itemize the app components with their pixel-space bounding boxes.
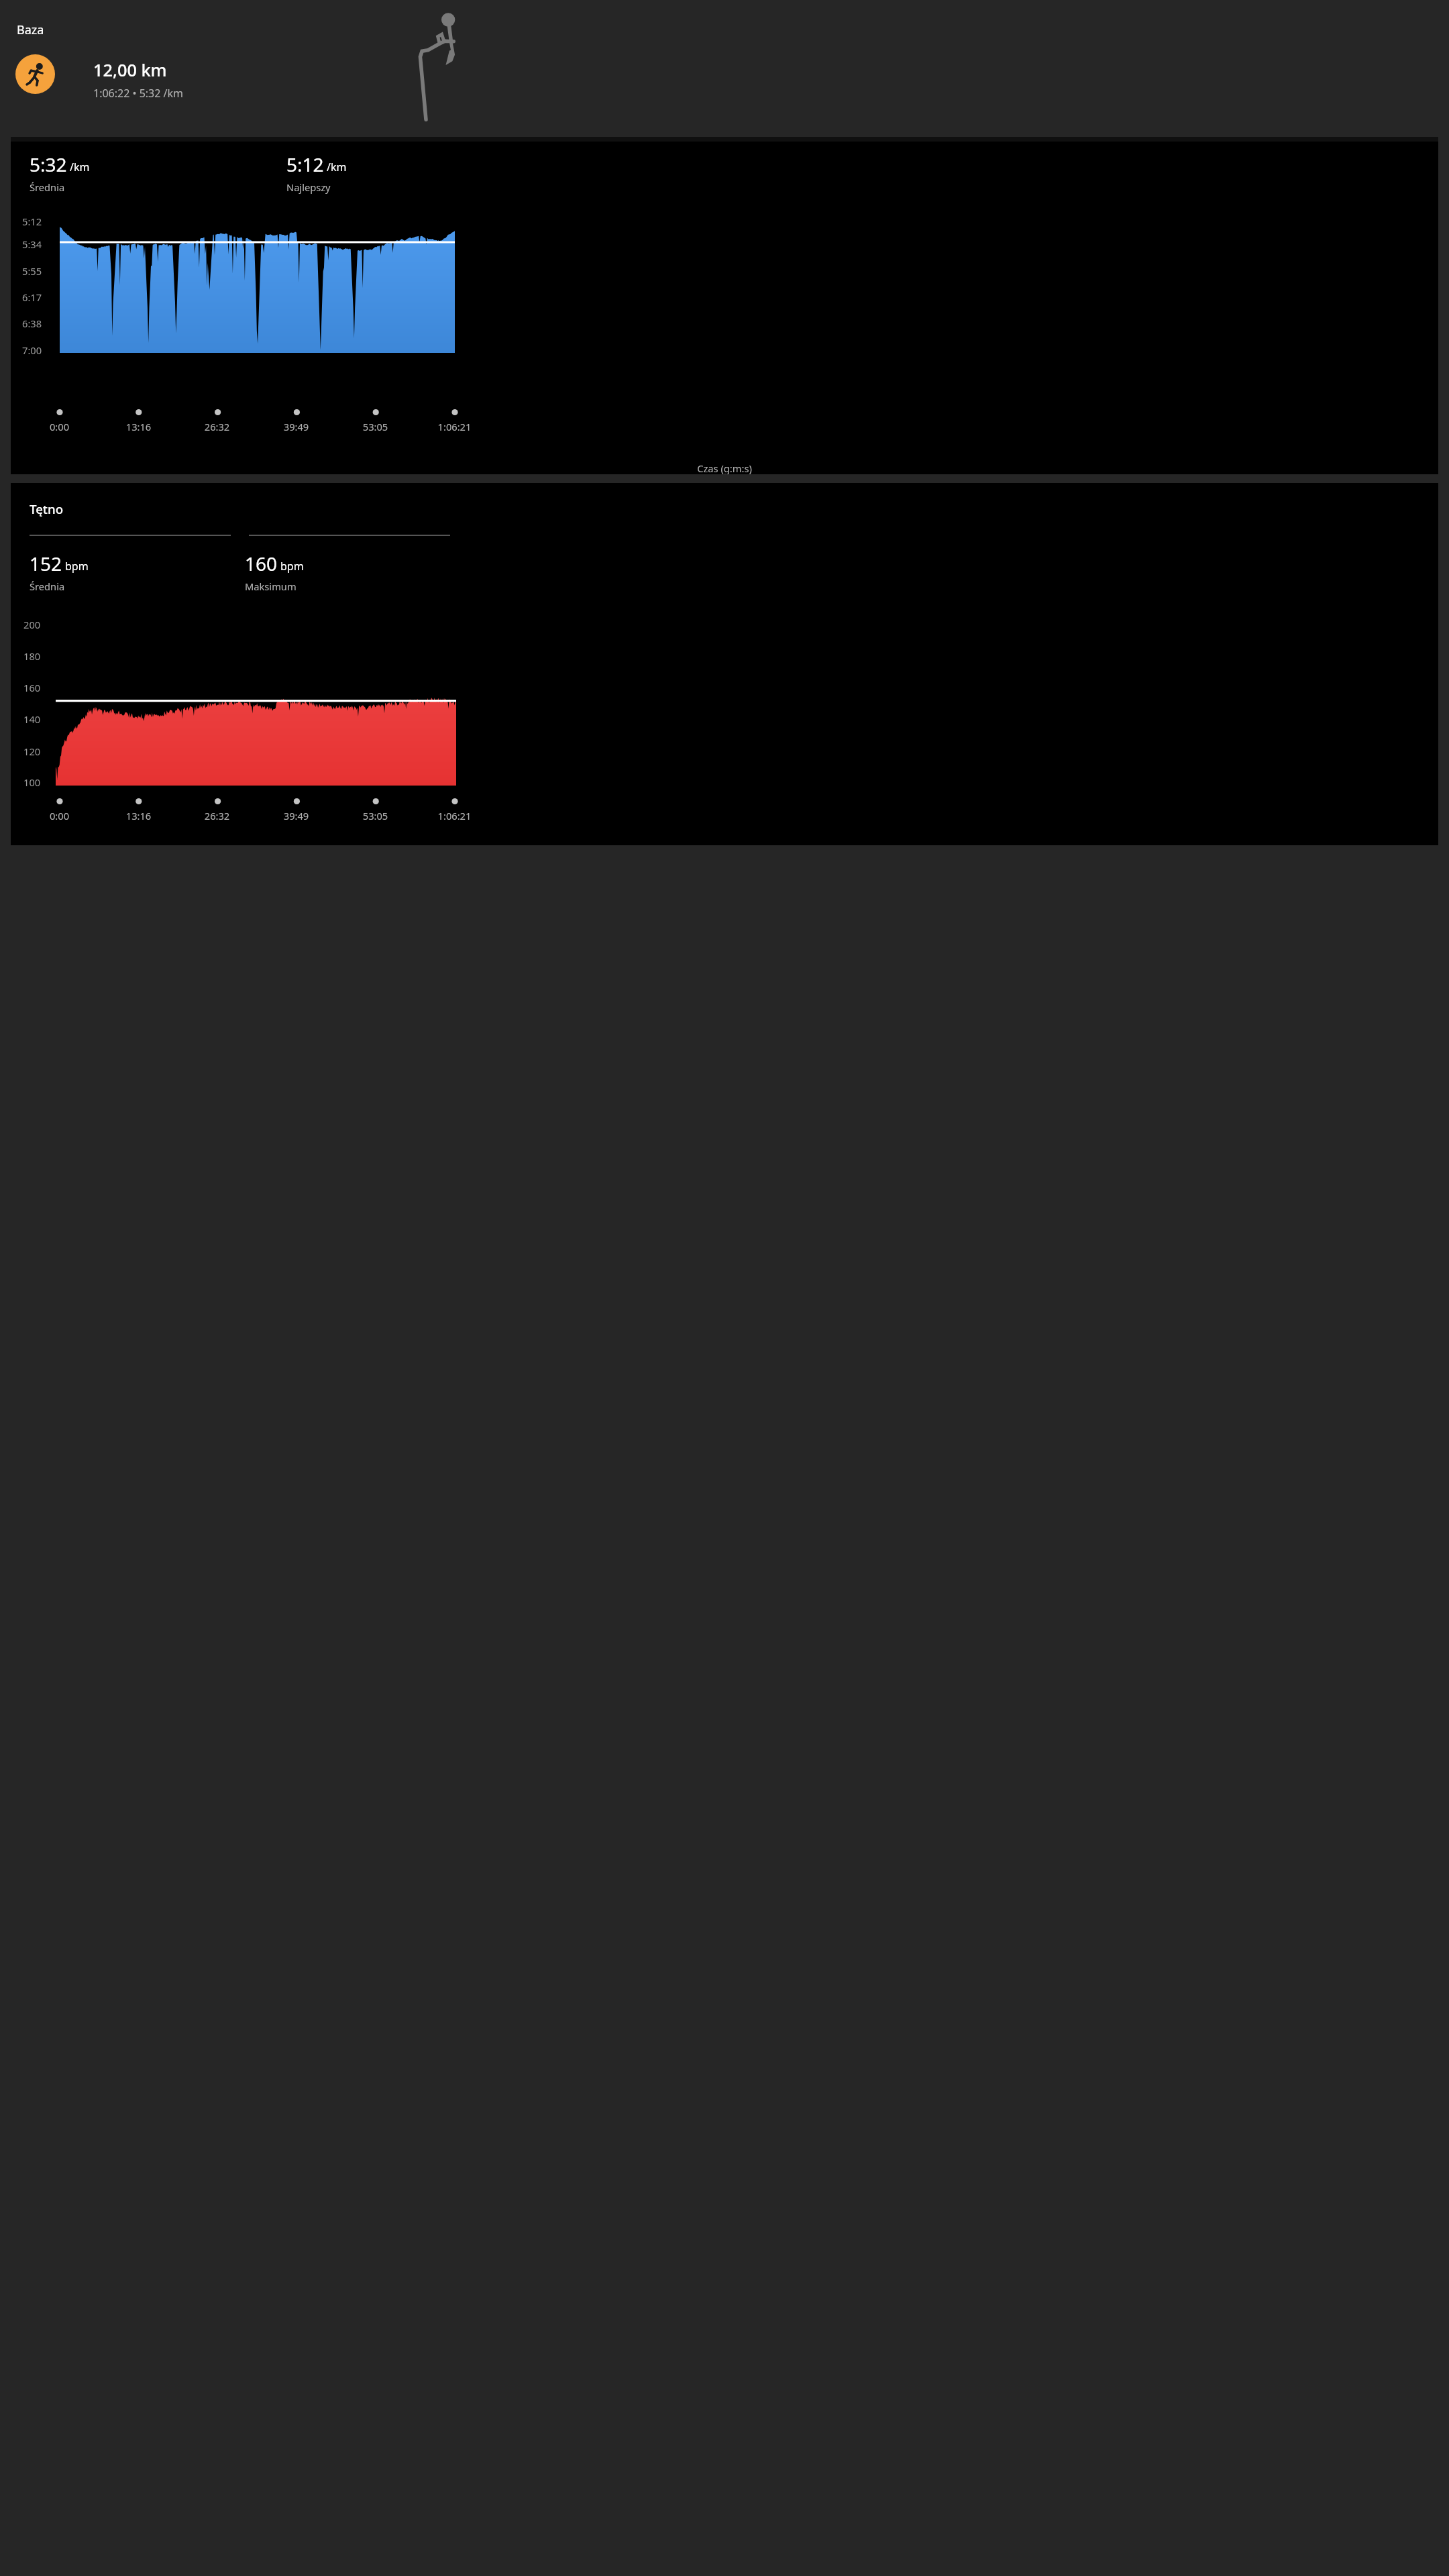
staticText: Baza (17, 21, 44, 38)
staticText: 1:06:21 (430, 420, 479, 433)
staticText: 6:17 (22, 290, 42, 304)
staticText: 1:06:21 (430, 809, 479, 822)
staticText: 26:32 (193, 420, 241, 433)
staticText: 7:00 (22, 343, 42, 357)
staticText: 0:00 (35, 420, 84, 433)
staticText: Tętno (30, 500, 64, 517)
staticText: 53:05 (351, 809, 400, 822)
staticText: 39:49 (272, 809, 321, 822)
staticText: /km (327, 160, 347, 174)
staticText: 200 (23, 618, 41, 631)
staticText: 152 (30, 551, 62, 576)
staticText: 5:55 (22, 264, 42, 278)
staticText: bpm (280, 559, 304, 574)
staticText: Czas (g:m:s) (11, 462, 1438, 474)
button[interactable]: Tętno (11, 483, 1438, 845)
staticText: 53:05 (351, 420, 400, 433)
button[interactable]: 5:32 (11, 137, 1438, 474)
staticText: 100 (23, 775, 41, 789)
staticText: 39:49 (272, 420, 321, 433)
staticText: bpm (65, 559, 89, 574)
staticText: Średnia (30, 180, 65, 194)
staticText: 160 (23, 681, 41, 694)
staticText: Średnia (30, 580, 65, 593)
staticText: 120 (23, 745, 41, 758)
staticText: 5:12 (22, 215, 42, 228)
staticText: 140 (23, 712, 41, 726)
staticText: Najlepszy (286, 180, 331, 194)
staticText: /km (70, 160, 90, 174)
staticText: 0:00 (35, 809, 84, 822)
staticText: 13:16 (114, 809, 163, 822)
staticText: 160 (245, 551, 278, 576)
staticText: 6:38 (22, 317, 42, 330)
button[interactable]: Baza (0, 0, 1449, 133)
staticText: 180 (23, 649, 41, 663)
staticText: 5:34 (22, 237, 42, 251)
staticText: 12,00 km (93, 58, 167, 82)
other: Bieganie (15, 54, 55, 94)
other: Trasa (400, 11, 472, 123)
staticText: 1:06:22 • 5:32 /km (93, 86, 184, 101)
staticText: Maksimum (245, 580, 297, 593)
staticText: 5:12 (286, 152, 324, 177)
staticText: 13:16 (114, 420, 163, 433)
staticText: 26:32 (193, 809, 241, 822)
staticText: 5:32 (30, 152, 67, 177)
